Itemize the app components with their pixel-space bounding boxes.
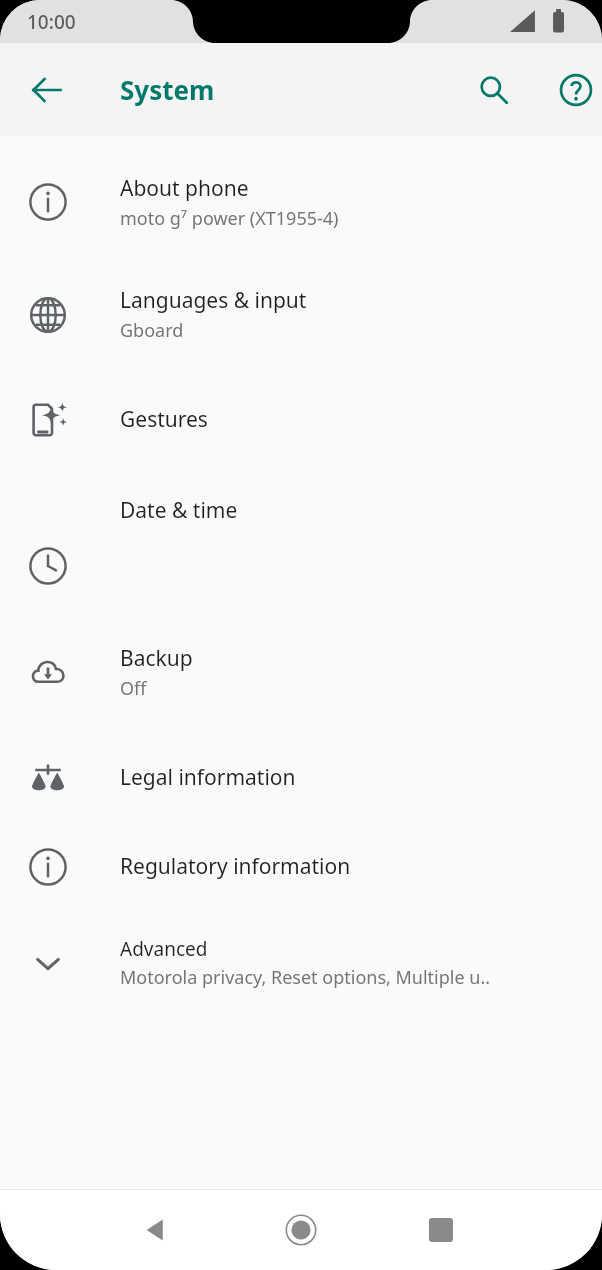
button[interactable]: About phone xyxy=(0,150,602,254)
button[interactable]: Help xyxy=(540,54,602,126)
staticText: Advanced xyxy=(120,936,208,962)
staticText: 10:00 xyxy=(27,9,76,35)
staticText: Legal information xyxy=(120,763,296,792)
staticText: About phone xyxy=(120,174,249,203)
button[interactable]: Back xyxy=(11,54,83,126)
button[interactable]: Legal information xyxy=(0,733,602,822)
staticText: Motorola privacy, Reset options, Multipl… xyxy=(120,965,491,990)
button[interactable]: Backup xyxy=(0,612,602,733)
staticText: System xyxy=(120,72,215,107)
button[interactable]: Search xyxy=(458,54,530,126)
staticText: Backup xyxy=(120,644,193,673)
button[interactable]: Gestures xyxy=(0,375,602,464)
staticText: Date & time xyxy=(120,496,238,525)
staticText: Regulatory information xyxy=(120,852,351,881)
button[interactable]: Date & time xyxy=(0,464,602,612)
button[interactable]: Recent apps xyxy=(405,1194,477,1266)
staticText: moto g⁷ power (XT1955-4) xyxy=(120,206,339,231)
staticText: Gestures xyxy=(120,405,208,434)
button[interactable]: Back xyxy=(121,1194,193,1266)
button[interactable]: Languages & input xyxy=(0,254,602,375)
button[interactable]: Home xyxy=(265,1194,337,1266)
staticText: Languages & input xyxy=(120,286,307,315)
button[interactable]: Advanced xyxy=(0,911,602,1015)
staticText: Off xyxy=(120,676,147,701)
button[interactable]: Regulatory information xyxy=(0,822,602,911)
staticText: Gboard xyxy=(120,318,184,343)
